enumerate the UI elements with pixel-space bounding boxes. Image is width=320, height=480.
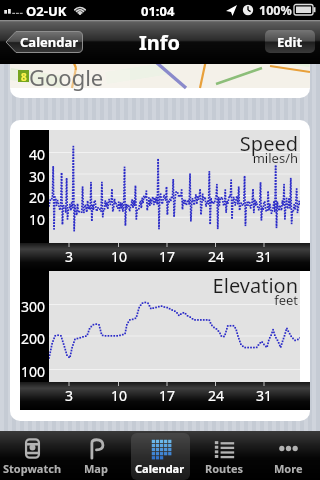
staticText: 01:04 — [141, 2, 175, 20]
staticText: 10 — [109, 247, 129, 266]
staticText: 8 — [21, 70, 27, 82]
staticText: 17 — [157, 247, 177, 266]
staticText: Speed — [10, 130, 298, 157]
button[interactable]: Edit — [265, 30, 315, 53]
staticText: Calendar — [135, 461, 185, 476]
staticText: 10 — [10, 210, 45, 229]
staticText: O2-UK — [26, 2, 67, 20]
staticText: 30 — [10, 167, 45, 186]
staticText: 100% — [259, 2, 292, 19]
staticText: Info — [139, 29, 181, 56]
staticText: 20 — [10, 188, 45, 207]
staticText: 40 — [10, 145, 45, 164]
staticText: Elevation — [10, 272, 298, 299]
staticText: 3 — [59, 247, 79, 266]
staticText: miles/h — [10, 149, 298, 167]
staticText: Map — [84, 461, 108, 476]
staticText: Routes — [205, 461, 244, 476]
button[interactable]: Routes — [192, 431, 256, 480]
staticText: 31 — [254, 386, 274, 405]
staticText: 100 — [10, 362, 45, 381]
staticText: 17 — [157, 386, 177, 405]
staticText: feet — [10, 291, 298, 309]
button[interactable]: Calendar — [128, 431, 192, 480]
button[interactable]: Stopwatch — [0, 431, 64, 480]
button[interactable]: Map — [64, 431, 128, 480]
staticText: Google — [29, 62, 104, 92]
button[interactable]: Calendar — [5, 31, 83, 53]
staticText: 3 — [59, 386, 79, 405]
staticText: 24 — [206, 247, 226, 266]
staticText: 24 — [206, 386, 226, 405]
staticText: 200 — [10, 329, 45, 348]
staticText: More — [274, 461, 303, 476]
staticText: Stopwatch — [3, 461, 62, 476]
staticText: Edit — [277, 33, 303, 51]
staticText: Calendar — [20, 33, 79, 51]
staticText: 31 — [254, 247, 274, 266]
staticText: 10 — [109, 386, 129, 405]
staticText: 300 — [10, 297, 45, 316]
button[interactable]: More — [256, 431, 320, 480]
